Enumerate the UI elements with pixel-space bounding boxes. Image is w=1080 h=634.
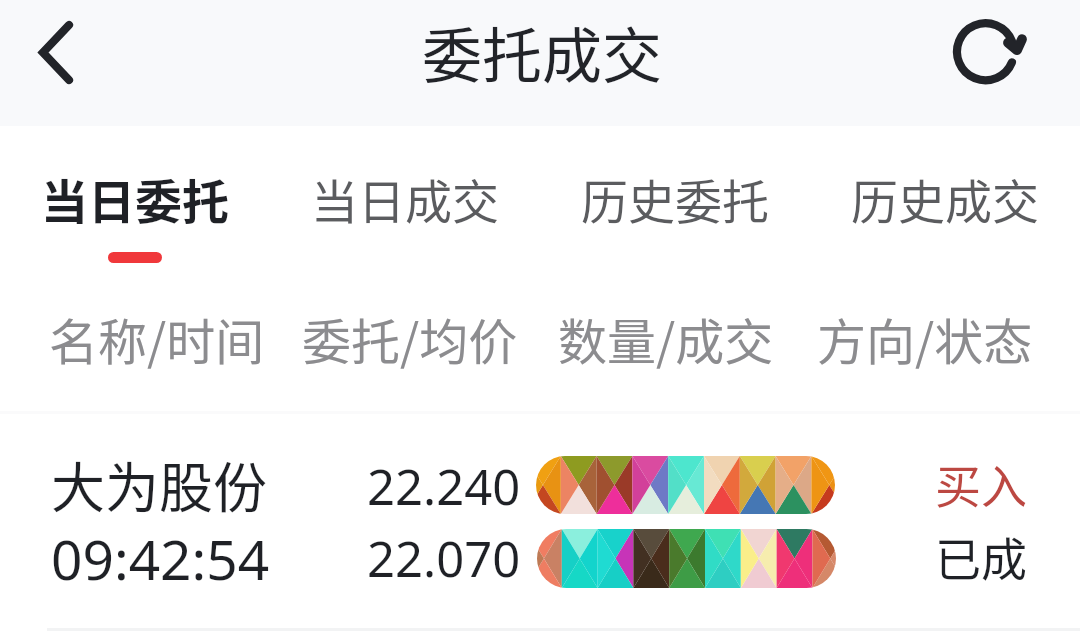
button[interactable]: 当日委托	[0, 126, 270, 286]
staticText: 当日成交	[311, 164, 499, 232]
staticText: 大为股份	[51, 445, 267, 523]
staticText: 历史成交	[851, 164, 1039, 232]
staticText: 方向/状态	[817, 303, 1033, 374]
staticText: 委托成交	[422, 8, 662, 95]
button[interactable]: 历史成交	[810, 126, 1080, 286]
staticText: 数量/成交	[558, 303, 774, 374]
button[interactable]: Back	[0, 0, 110, 126]
staticText: 当日委托	[41, 164, 229, 232]
button[interactable]: 大为股份	[0, 413, 1080, 629]
staticText: 22.240	[367, 453, 521, 520]
staticText: 名称/时间	[49, 303, 265, 374]
staticText: 委托/均价	[302, 303, 518, 374]
staticText: 买入	[935, 450, 1027, 517]
button[interactable]: Refresh	[930, 0, 1050, 126]
button[interactable]: 历史委托	[540, 126, 810, 286]
staticText: 历史委托	[581, 164, 769, 232]
staticText: 已成	[935, 523, 1027, 590]
button[interactable]: 当日成交	[270, 126, 540, 286]
staticText: 22.070	[367, 525, 521, 592]
staticText: 09:42:54	[51, 521, 270, 596]
